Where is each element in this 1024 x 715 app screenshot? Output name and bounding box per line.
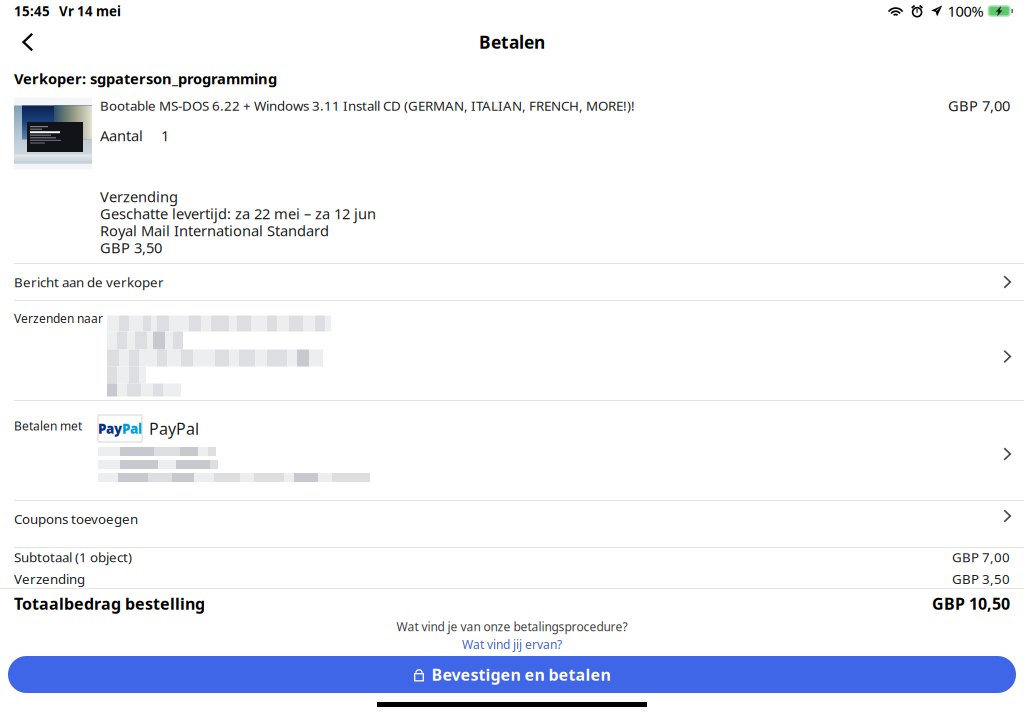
- staticText: Betalen: [479, 30, 545, 53]
- staticText: GBP 7,00: [948, 96, 1010, 115]
- staticText: Betalen met: [14, 418, 82, 434]
- staticText: PayPal: [149, 418, 199, 439]
- staticText: GBP 7,00: [952, 548, 1010, 566]
- staticText: Bericht aan de verkoper: [14, 273, 164, 291]
- staticText: 1: [161, 126, 169, 145]
- button[interactable]: Bericht aan de verkoper: [0, 264, 1024, 300]
- staticText: Wat vind je van onze betalingsprocedure?: [396, 619, 627, 634]
- staticText: Aantal: [100, 126, 143, 145]
- staticText: 100%: [948, 1, 984, 21]
- staticText: Bootable MS-DOS 6.22 + Windows 3.11 Inst…: [100, 97, 635, 114]
- staticText: Verzending: [14, 570, 85, 588]
- staticText: 15:45: [14, 2, 50, 20]
- staticText: Totaalbedrag bestelling: [14, 593, 205, 614]
- button[interactable]: Coupons toevoegen: [0, 501, 1024, 547]
- button[interactable]: Back: [0, 22, 50, 62]
- staticText: Verzenden naar: [14, 310, 103, 326]
- staticText: Bevestigen en betalen: [432, 664, 611, 685]
- button[interactable]: Bevestigen en betalen: [0, 656, 1024, 693]
- staticText: Pay: [98, 420, 122, 437]
- staticText: Royal Mail International Standard: [100, 221, 329, 240]
- staticText: Geschatte levertijd: za 22 mei – za 12 j…: [100, 204, 376, 223]
- staticText: Verkoper: sgpaterson_programming: [14, 69, 277, 88]
- staticText: GBP 10,50: [932, 593, 1010, 614]
- button[interactable]: Verzenden naar: [0, 301, 1024, 400]
- staticText: Coupons toevoegen: [14, 510, 138, 528]
- staticText: GBP 3,50: [100, 238, 162, 257]
- staticText: Wat vind jij ervan?: [462, 636, 562, 652]
- button[interactable]: Wat vind jij ervan?: [462, 636, 562, 652]
- staticText: Vr 14 mei: [59, 2, 121, 20]
- staticText: Subtotaal (1 object): [14, 548, 132, 566]
- staticText: GBP 3,50: [952, 570, 1010, 588]
- staticText: Verzending: [100, 187, 178, 206]
- button[interactable]: Betalen met: [0, 401, 1024, 500]
- staticText: Pal: [122, 420, 142, 437]
